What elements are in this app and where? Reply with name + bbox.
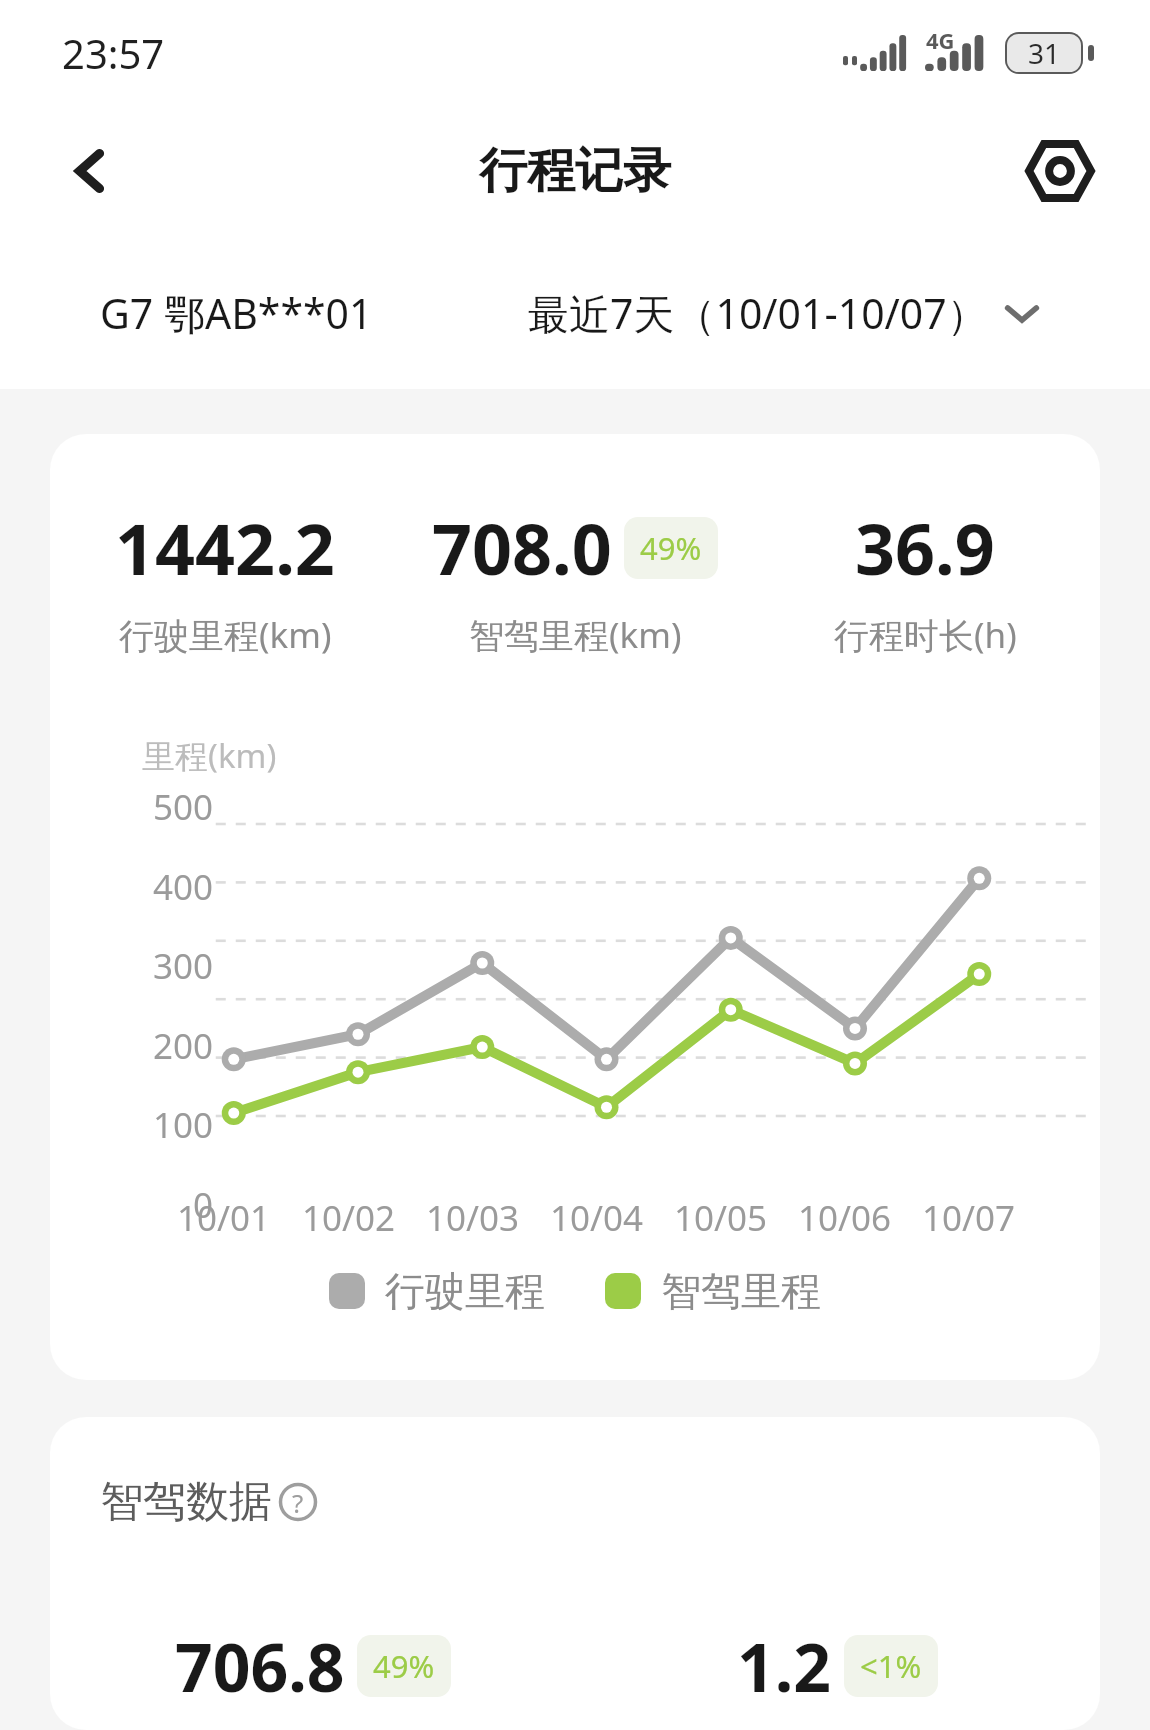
staticText: 行驶里程(km) xyxy=(119,611,332,659)
staticText: 10/03 xyxy=(426,1194,520,1242)
staticText: <1% xyxy=(860,1645,922,1687)
staticText: 36.9 xyxy=(855,500,995,595)
staticText: 31 xyxy=(1028,34,1061,72)
staticText: G7 鄂AB***01 xyxy=(100,285,373,341)
button[interactable]: 智驾里程 xyxy=(605,1266,821,1316)
staticText: 49% xyxy=(373,1645,435,1687)
staticText: 行程时长(h) xyxy=(834,611,1017,659)
staticText: 23:57 xyxy=(62,26,165,80)
button[interactable]: 智驾数据 xyxy=(100,1475,318,1529)
staticText: 400 xyxy=(50,863,213,911)
staticText: 708.0 xyxy=(432,500,612,595)
button[interactable]: 最近7天（10/01-10/07） xyxy=(528,285,1040,341)
staticText: 10/05 xyxy=(674,1194,768,1242)
staticText: 49% xyxy=(640,527,702,569)
staticText: 1.2 xyxy=(737,1621,832,1711)
button[interactable]: Back xyxy=(42,123,138,219)
staticText: 10/02 xyxy=(302,1194,396,1242)
staticText: 300 xyxy=(50,942,213,990)
staticText: 0 xyxy=(50,1181,213,1229)
staticText: 500 xyxy=(50,783,213,831)
staticText: 1442.2 xyxy=(115,500,335,595)
staticText: 100 xyxy=(50,1101,213,1149)
staticText: 智驾里程 xyxy=(661,1266,821,1316)
staticText: 706.8 xyxy=(175,1621,345,1711)
staticText: 10/06 xyxy=(798,1194,892,1242)
staticText: 200 xyxy=(50,1022,213,1070)
button[interactable]: Settings xyxy=(1012,123,1108,219)
staticText: 行驶里程 xyxy=(385,1266,545,1316)
staticText: 10/07 xyxy=(922,1194,1016,1242)
staticText: 智驾里程(km) xyxy=(469,611,682,659)
staticText: 智驾数据 xyxy=(100,1475,272,1529)
staticText: 行程记录 xyxy=(479,141,671,201)
staticText: 里程(km) xyxy=(142,733,277,778)
staticText: 10/04 xyxy=(550,1194,644,1242)
staticText: ? xyxy=(292,1485,304,1520)
button[interactable]: 行驶里程 xyxy=(329,1266,545,1316)
staticText: 4G xyxy=(926,25,955,55)
staticText: 10/01 xyxy=(177,1194,271,1242)
staticText: 最近7天（10/01-10/07） xyxy=(528,285,988,341)
